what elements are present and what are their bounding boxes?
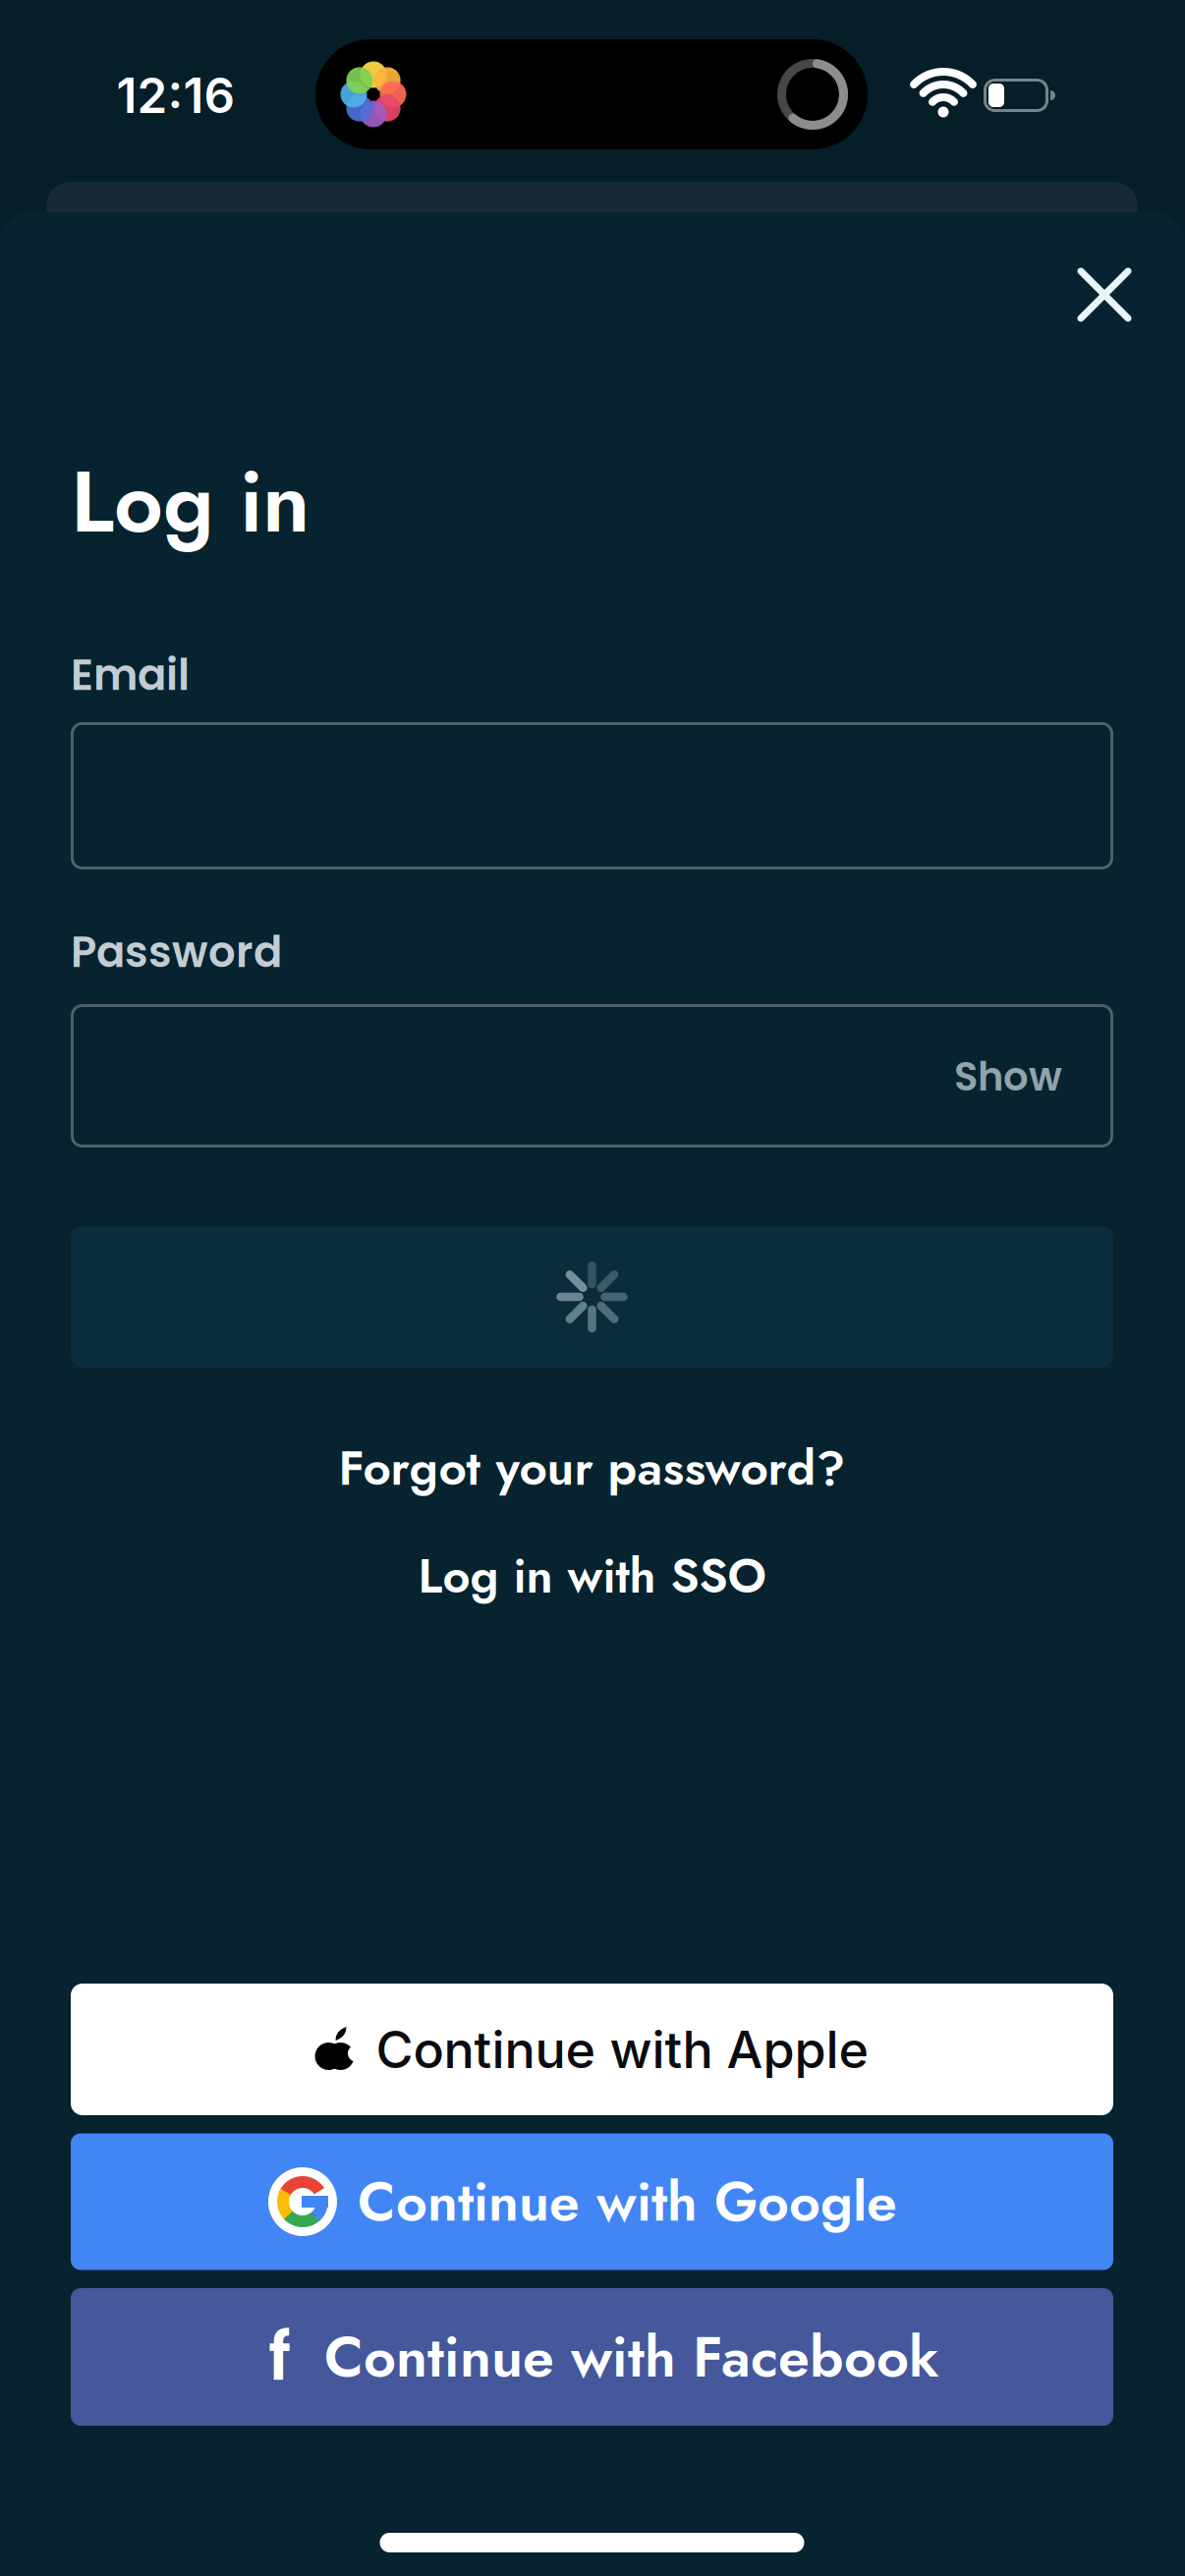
button[interactable]: Log in with SSO [418,1541,766,1610]
button[interactable]: Continue with Apple [71,1984,1113,2115]
staticText: Show [954,1049,1062,1104]
staticText: Log in [71,441,310,564]
button[interactable] [71,1004,1113,1148]
button[interactable] [71,1226,1113,1368]
button[interactable] [71,722,1113,869]
button[interactable]: Show [846,1049,1062,1104]
staticText: Continue with Google [358,2162,897,2241]
staticText: 12:16 [116,66,235,125]
button[interactable]: Continue with Google [71,2133,1113,2270]
staticText: Forgot your password? [339,1433,846,1503]
staticText: Log in with SSO [418,1541,766,1610]
staticText: Continue with Apple [376,2018,869,2080]
staticText: Password [71,922,282,982]
staticText: Email [71,645,190,705]
button[interactable]: Forgot your password? [339,1433,846,1503]
staticText: Continue with Facebook [324,2316,939,2398]
staticText: f [268,2311,291,2403]
button[interactable] [1057,248,1152,342]
button[interactable]: f [71,2288,1113,2426]
